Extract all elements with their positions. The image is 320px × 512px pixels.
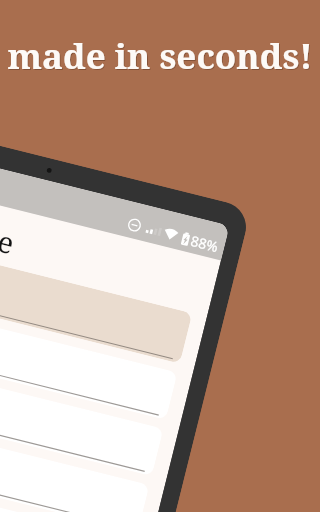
button[interactable] — [0, 251, 192, 364]
other: Do not disturb — [127, 217, 142, 233]
staticText: made in seconds! — [8, 33, 314, 81]
button[interactable] — [0, 423, 150, 512]
staticText: made in seconds! — [7, 32, 313, 80]
button[interactable] — [0, 480, 136, 512]
staticText: 88% — [189, 231, 220, 256]
button[interactable] — [0, 311, 178, 420]
staticText: Note — [0, 209, 19, 262]
button[interactable] — [0, 367, 164, 476]
